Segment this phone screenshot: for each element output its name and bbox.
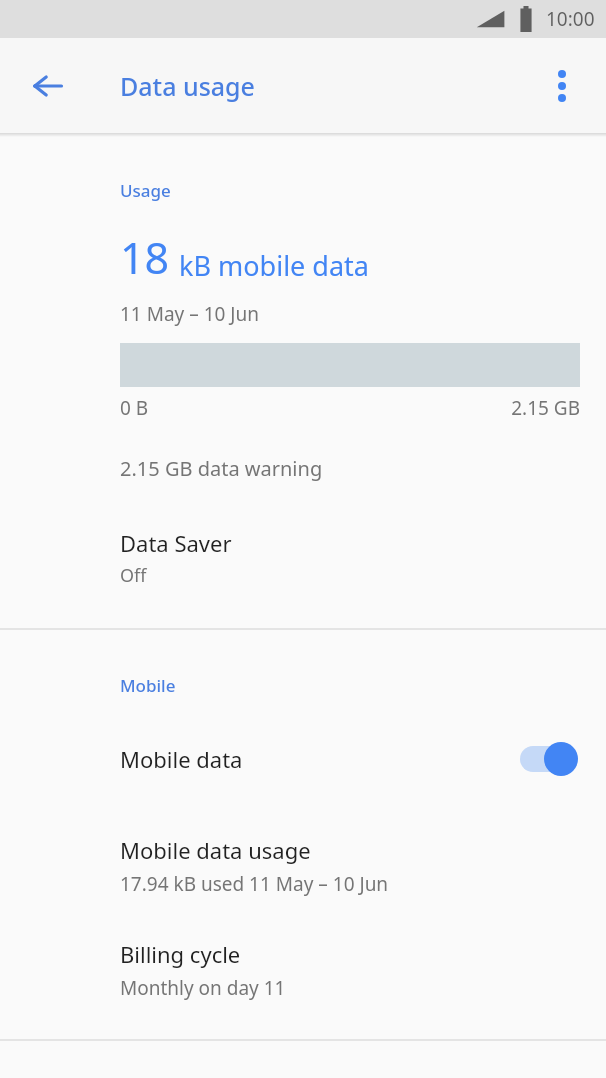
staticText: 10:00 <box>546 6 595 32</box>
button[interactable]: Mobile data <box>0 735 606 783</box>
staticText: Mobile data <box>120 744 518 774</box>
staticText: 17.94 kB used 11 May – 10 Jun <box>120 871 389 897</box>
staticText: Billing cycle <box>120 939 241 969</box>
button[interactable]: More options <box>536 60 588 112</box>
button[interactable]: Mobile data usage <box>0 833 606 899</box>
button[interactable]: 2.15 GB data warning <box>0 453 606 484</box>
staticText: Off <box>120 563 147 588</box>
staticText: 11 May – 10 Jun <box>120 301 259 327</box>
staticText: Data Saver <box>120 528 232 558</box>
staticText: kB mobile data <box>179 247 369 284</box>
button[interactable]: Mobile data toggle <box>518 739 580 779</box>
staticText: Monthly on day 11 <box>120 975 286 1001</box>
staticText: 2.15 GB data warning <box>120 455 323 482</box>
staticText: Mobile <box>120 674 176 697</box>
button[interactable]: Data Saver <box>0 526 606 590</box>
staticText: 0 B <box>120 395 149 421</box>
staticText: Mobile data usage <box>120 835 311 865</box>
button[interactable]: Back <box>20 58 76 114</box>
staticText: 18 <box>120 228 170 287</box>
button[interactable]: Billing cycle <box>0 937 606 1003</box>
staticText: 2.15 GB <box>149 395 580 421</box>
staticText: Data usage <box>120 69 255 103</box>
staticText: Usage <box>120 179 171 202</box>
